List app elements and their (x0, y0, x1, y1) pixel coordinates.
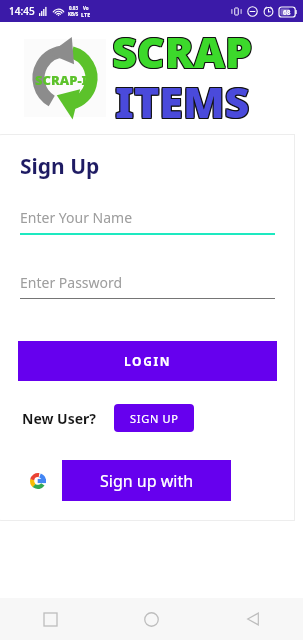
staticText: Enter Your Name (20, 208, 133, 227)
staticText: SCRAP (112, 21, 253, 80)
staticText: LOGIN (124, 353, 172, 369)
button[interactable]: Sign up with Google (29, 472, 47, 490)
button[interactable]: Enter Your Name (20, 208, 275, 235)
staticText: ITEMS (116, 72, 251, 125)
staticText: 14:45 (9, 4, 35, 18)
staticText: ITEMS (114, 72, 249, 125)
staticText: ITEMS (116, 73, 251, 126)
staticText: SCRAP (112, 22, 253, 81)
staticText: ITEMS (114, 71, 249, 124)
staticText: SCRAP (111, 21, 252, 80)
staticText: SCRAP (113, 23, 254, 82)
staticText: LTE (81, 11, 91, 18)
staticText: ITEMS (115, 73, 250, 126)
staticText: SIGN UP (130, 411, 179, 426)
staticText: SCRAP-IT (35, 71, 95, 89)
staticText: ITEMS (116, 71, 251, 124)
staticText: ITEMS (115, 71, 250, 124)
staticText: Sign Up (20, 152, 100, 181)
staticText: KB/S (68, 11, 79, 17)
staticText: SCRAP (112, 23, 253, 82)
staticText: 68 (283, 8, 291, 17)
button[interactable]: SIGN UP (114, 404, 194, 432)
button[interactable]: Sign up with (62, 460, 231, 501)
button[interactable]: Recents (0, 598, 101, 640)
staticText: SCRAP (111, 23, 252, 82)
staticText: 0.03 (69, 5, 78, 11)
staticText: SCRAP (111, 22, 252, 81)
staticText: Enter Password (20, 273, 123, 292)
staticText: New User? (22, 409, 96, 428)
staticText: Sign up with (100, 470, 194, 492)
button[interactable]: LOGIN (18, 341, 277, 381)
button[interactable]: Enter Password (20, 273, 275, 299)
button[interactable]: Home (101, 598, 202, 640)
staticText: ITEMS (115, 72, 250, 125)
staticText: Vo (83, 5, 89, 11)
staticText: SCRAP (113, 21, 254, 80)
button[interactable]: Back (202, 598, 303, 640)
staticText: SCRAP (113, 22, 254, 81)
staticText: ITEMS (114, 73, 249, 126)
